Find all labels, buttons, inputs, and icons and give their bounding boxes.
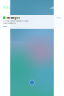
staticText: Messages	[6, 16, 19, 19]
staticText: Reply	[3, 26, 7, 27]
button[interactable]: Camera	[29, 80, 34, 85]
staticText: Lorem ipsum dolor sit amet consectetur	[3, 20, 29, 22]
button[interactable]: Messages	[1, 15, 63, 29]
staticText: 1h ago	[56, 17, 61, 19]
staticText: adipiscing elit sed do	[3, 22, 16, 24]
staticText: 9:41	[3, 6, 10, 9]
